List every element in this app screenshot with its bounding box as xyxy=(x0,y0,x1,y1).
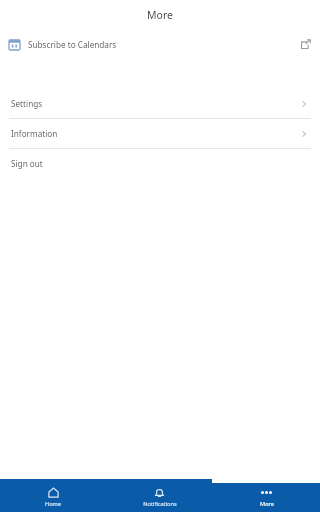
staticText: Settings xyxy=(11,98,43,109)
other: Calendar xyxy=(9,39,20,50)
button[interactable]: Settings xyxy=(0,89,320,118)
button[interactable]: Notifications xyxy=(106,484,213,511)
staticText: Information xyxy=(11,128,58,139)
button[interactable]: Home xyxy=(0,484,106,511)
staticText: More xyxy=(147,8,173,22)
staticText: Notifications xyxy=(143,500,177,508)
button[interactable]: Sign out xyxy=(0,149,320,178)
staticText: Sign out xyxy=(11,158,43,169)
staticText: Subscribe to Calendars xyxy=(28,39,117,50)
button[interactable]: Calendar xyxy=(0,29,320,59)
staticText: Home xyxy=(45,500,61,508)
button[interactable]: Information xyxy=(0,119,320,148)
button[interactable]: Open in new window xyxy=(300,39,311,50)
button[interactable]: More xyxy=(213,484,320,511)
staticText: More xyxy=(260,500,274,508)
